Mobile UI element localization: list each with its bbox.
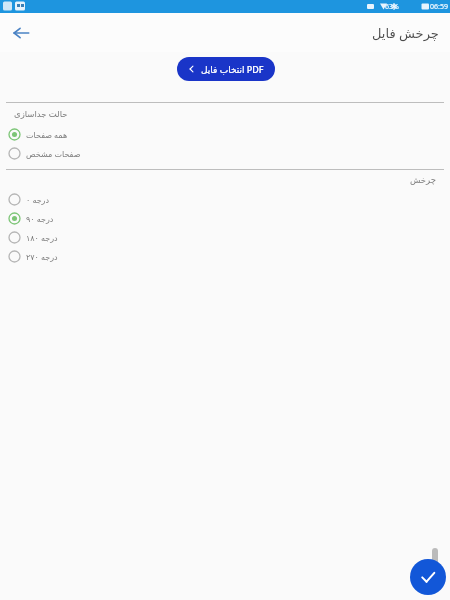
button[interactable]: ۱۸۰ درجه (0, 228, 450, 247)
staticText: همه صفحات (26, 129, 68, 140)
staticText: ۱۸۰ درجه (26, 232, 58, 243)
button[interactable]: ۰ درجه (0, 190, 450, 209)
button[interactable]: صفحات مشخص (0, 144, 450, 163)
staticText: چرخش (409, 175, 436, 185)
staticText: ۹۰ درجه (26, 213, 54, 224)
staticText: 06:59 (430, 2, 448, 12)
staticText: 63% (385, 2, 399, 12)
button[interactable]: Back (6, 18, 36, 48)
staticText: چرخش فایل (372, 24, 439, 42)
button[interactable]: ۲۷۰ درجه (0, 247, 450, 266)
button[interactable]: Confirm (410, 559, 446, 595)
staticText: ۲۷۰ درجه (26, 251, 58, 262)
button[interactable]: همه صفحات (0, 125, 450, 144)
staticText: صفحات مشخص (26, 148, 81, 159)
staticText: ۰ درجه (26, 194, 50, 205)
staticText: حالت جداسازی (14, 108, 68, 120)
button[interactable]: ۹۰ درجه (0, 209, 450, 228)
staticText: انتخاب فایل PDF (201, 63, 264, 75)
button[interactable]: انتخاب فایل PDF (177, 57, 275, 81)
